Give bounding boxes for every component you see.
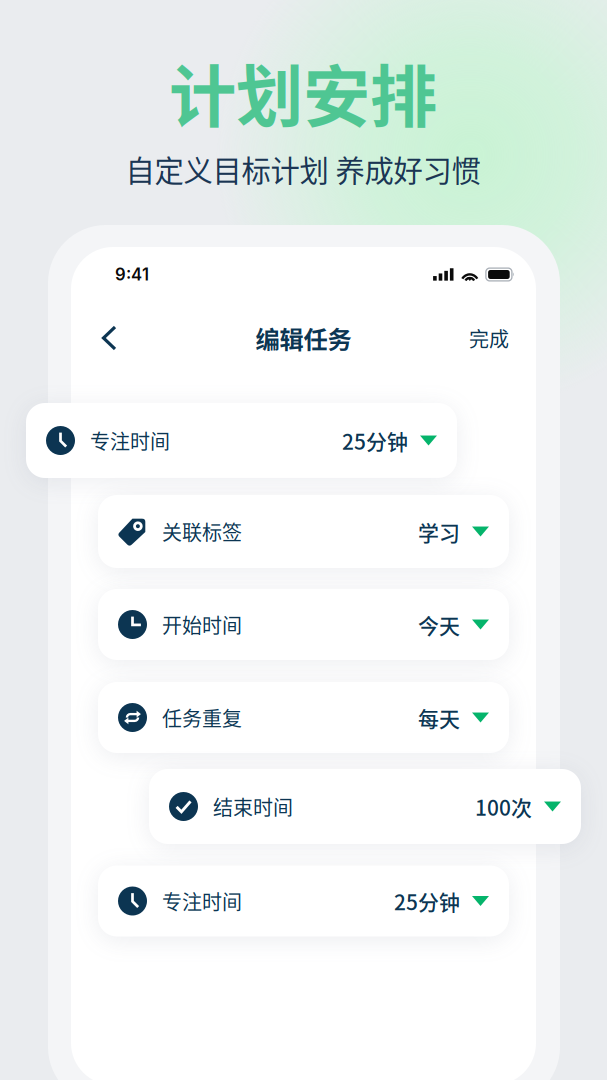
staticText: 今天 [418, 609, 460, 640]
staticText: 专注时间 [90, 426, 170, 455]
button[interactable]: 开始时间 [98, 589, 509, 660]
button[interactable]: 专注时间 [98, 865, 509, 936]
staticText: 25分钟 [394, 886, 460, 916]
staticText: 完成 [469, 323, 509, 352]
staticText: 专注时间 [162, 886, 242, 915]
staticText: 学习 [418, 516, 460, 547]
staticText: 自定义目标计划 养成好习惯 [125, 148, 480, 190]
button[interactable]: 结束时间 [149, 769, 581, 844]
staticText: 任务重复 [162, 703, 242, 732]
button[interactable]: 完成 [461, 313, 517, 362]
staticText: 关联标签 [162, 517, 242, 546]
button[interactable]: 任务重复 [98, 682, 509, 753]
staticText: 25分钟 [342, 425, 408, 456]
staticText: 100次 [475, 791, 532, 822]
staticText: 开始时间 [162, 610, 242, 639]
button[interactable]: Back [90, 313, 130, 363]
staticText: 编辑任务 [255, 320, 351, 355]
staticText: 计划安排 [169, 43, 437, 141]
staticText: 9:41 [115, 264, 149, 285]
staticText: 每天 [418, 702, 460, 733]
button[interactable]: 关联标签 [98, 495, 509, 568]
button[interactable]: 专注时间 [26, 403, 457, 478]
staticText: 结束时间 [213, 792, 293, 821]
